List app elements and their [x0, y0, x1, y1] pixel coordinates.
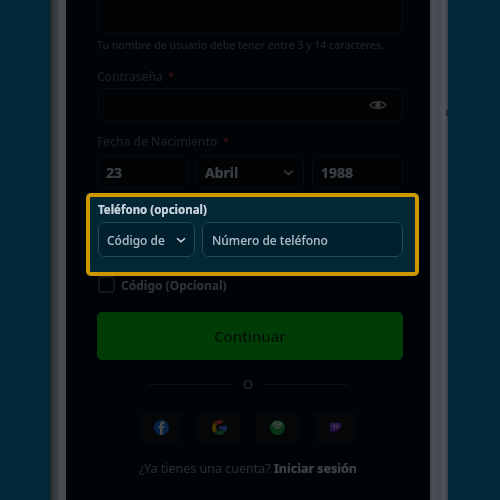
button[interactable]: Sign in with Spotify: [256, 411, 298, 444]
button[interactable]: Sign in with Twitch: [314, 411, 356, 444]
staticText: Fecha de Nacimiento: [97, 133, 218, 149]
staticText: Número de teléfono: [212, 232, 328, 248]
staticText: Continuar: [214, 326, 286, 346]
staticText: O: [243, 375, 254, 393]
button[interactable]: Número de teléfono: [202, 222, 403, 257]
staticText: Contraseña: [97, 68, 163, 84]
staticText: *: [223, 133, 230, 148]
staticText: *: [168, 68, 175, 83]
button[interactable]: Continuar: [97, 312, 403, 360]
staticText: Tu nombre de usuario debe tener entre 3 …: [97, 38, 384, 52]
button[interactable]: Abril: [196, 156, 304, 189]
staticText: Abril: [205, 163, 239, 182]
button[interactable]: Código de: [98, 222, 195, 257]
staticText: Código (Opcional): [121, 277, 227, 293]
button[interactable]: 23: [97, 156, 188, 189]
staticText: Código de: [107, 232, 165, 248]
staticText: ¿Ya tienes una cuenta?: [139, 460, 274, 477]
button[interactable]: Sign in with Facebook: [140, 411, 182, 444]
button[interactable]: Código (Opcional): [98, 276, 227, 293]
button[interactable]: Sign in with Google: [198, 411, 240, 444]
button[interactable]: Show password: [366, 93, 390, 117]
staticText: 23: [106, 163, 123, 182]
button[interactable]: Iniciar sesión: [274, 460, 357, 477]
button[interactable]: 1988: [312, 156, 403, 189]
staticText: 1988: [321, 163, 354, 182]
staticText: Teléfono (opcional): [98, 202, 207, 218]
button[interactable]: [98, 88, 403, 122]
